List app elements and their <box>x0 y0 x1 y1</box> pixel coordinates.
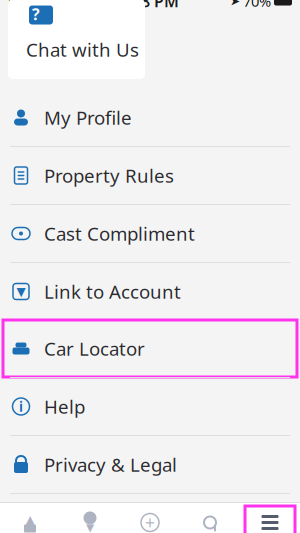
button[interactable]: Home <box>0 503 60 533</box>
staticText: Chat with Us <box>26 37 139 62</box>
staticText: ? <box>32 3 40 25</box>
button[interactable]: Search <box>180 503 240 533</box>
button[interactable]: ▼ <box>0 263 300 320</box>
staticText: ▮▮ <box>8 0 20 7</box>
button[interactable]: Property Rules <box>0 147 300 204</box>
staticText: My Profile <box>44 105 132 130</box>
staticText: ▲ <box>25 512 35 527</box>
staticText: Privacy & Legal <box>44 452 177 477</box>
button[interactable]: My Profile <box>0 89 300 146</box>
staticText: Help <box>44 394 85 419</box>
staticText: ➤ <box>230 0 240 8</box>
button[interactable]: Car Locator <box>0 320 300 377</box>
button[interactable]: Cast Compliment <box>0 205 300 262</box>
button[interactable]: Privacy & Legal <box>0 436 300 493</box>
button[interactable]: Menu <box>240 503 300 533</box>
staticText: Link to Account <box>44 279 181 304</box>
button[interactable]: Add <box>120 503 180 533</box>
staticText: Car Locator <box>44 336 145 361</box>
button[interactable]: i <box>0 378 300 435</box>
staticText: 70% <box>243 0 271 11</box>
staticText: 3:58 PM <box>119 0 179 12</box>
staticText: ▼ <box>16 285 25 298</box>
staticText: Cast Compliment <box>44 221 195 246</box>
staticText: i <box>19 398 23 415</box>
staticText: Property Rules <box>44 163 174 188</box>
button[interactable]: Map <box>60 503 120 533</box>
staticText: AT&T <box>22 0 56 11</box>
staticText: ▼ <box>86 521 94 533</box>
staticText: + <box>145 511 155 533</box>
button[interactable]: ? <box>8 0 145 79</box>
